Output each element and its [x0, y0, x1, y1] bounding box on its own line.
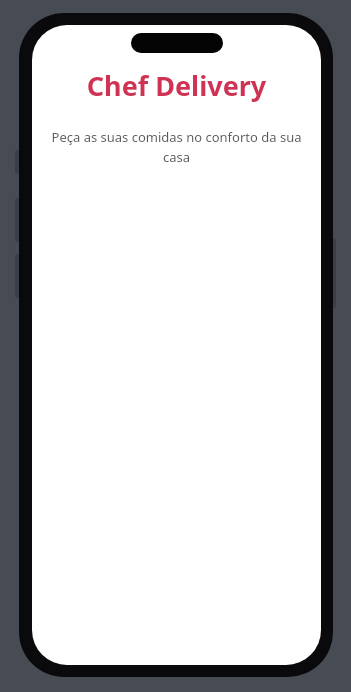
other: Dynamic Island [131, 33, 223, 53]
button[interactable]: Volume down [15, 254, 20, 298]
button[interactable]: Chef Delivery [32, 67, 321, 104]
staticText: Peça as suas comidas no conforto da sua … [42, 128, 311, 166]
button[interactable]: Silent mode switch [15, 150, 20, 174]
button[interactable]: Power [331, 238, 336, 308]
button[interactable]: Volume up [15, 198, 20, 242]
